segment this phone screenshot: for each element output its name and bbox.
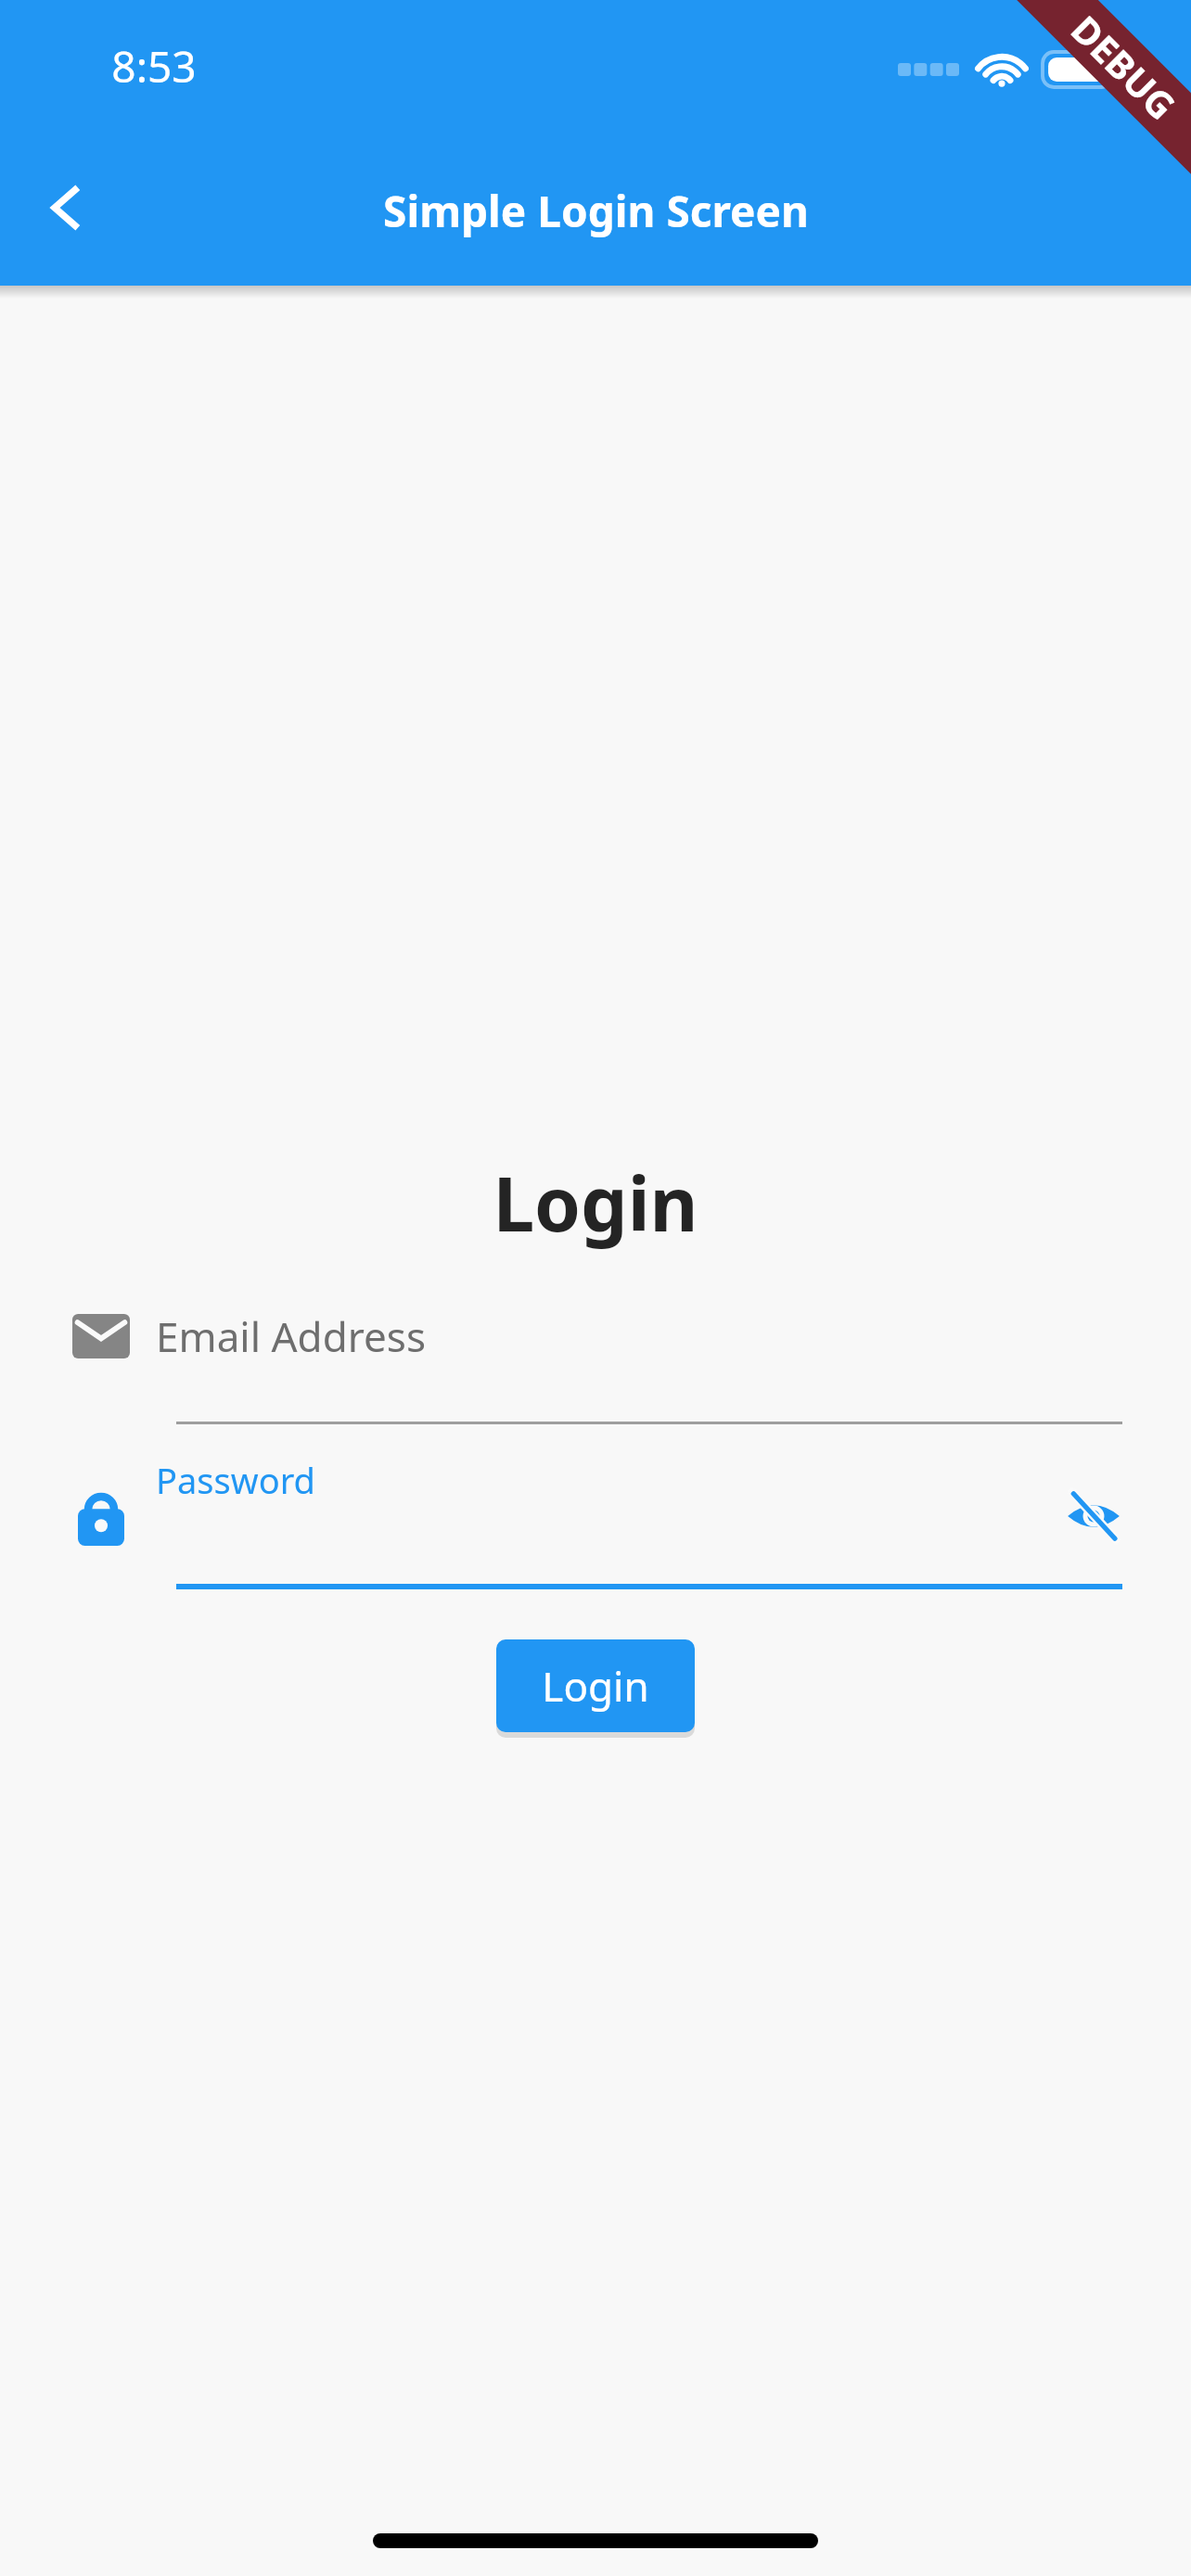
staticText: Email Address xyxy=(156,1308,426,1364)
staticText: 8:53 xyxy=(111,37,197,96)
staticText: Password xyxy=(156,1456,315,1504)
button[interactable]: Toggle password visibility xyxy=(1024,1448,1163,1584)
button[interactable]: Password xyxy=(0,1448,1191,1584)
staticText: Simple Login Screen xyxy=(383,182,809,240)
button[interactable]: Login xyxy=(496,1639,695,1732)
button[interactable]: Email Address xyxy=(0,1294,1191,1379)
staticText: Login xyxy=(542,1658,649,1714)
staticText: Login xyxy=(493,1152,698,1253)
button[interactable]: Back xyxy=(20,163,109,252)
staticText: DEBUG xyxy=(1061,4,1187,130)
